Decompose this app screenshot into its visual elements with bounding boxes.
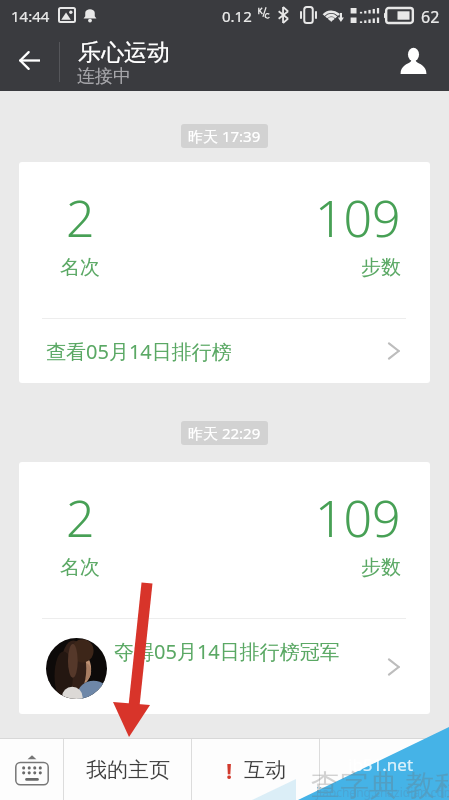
button[interactable]: 夺得05月14日排行榜冠军 [46, 619, 400, 714]
staticText: 2 [66, 184, 95, 252]
staticText: jiaocheng.chazidian.com [316, 784, 449, 800]
staticText: 昨天 17:39 [188, 126, 261, 146]
staticText: 名次 [60, 255, 100, 280]
button[interactable]: Back [0, 30, 59, 91]
staticText: 109 [315, 484, 401, 552]
button[interactable]: 我的主页 [64, 739, 191, 800]
staticText: 查字典 教程网家 [311, 764, 449, 800]
button[interactable]: Profile [387, 30, 439, 91]
staticText: 109 [315, 184, 401, 252]
staticText: 步数 [361, 255, 401, 280]
staticText: 14:44 [11, 6, 50, 26]
button[interactable]: ! [192, 739, 319, 800]
staticText: 我的主页 [86, 757, 170, 783]
button[interactable]: Keyboard [0, 739, 63, 800]
button[interactable]: 查看05月14日排行榜 [46, 319, 400, 383]
staticText: 查看05月14日排行榜 [46, 338, 232, 365]
staticText: 2 [66, 484, 95, 552]
staticText: ! [226, 755, 233, 785]
staticText: 0.12 [222, 6, 252, 26]
staticText: 连接中 [77, 65, 131, 88]
staticText: 夺得05月14日排行榜冠军 [114, 638, 340, 665]
staticText: 互动 [244, 757, 286, 783]
staticText: 昨天 22:29 [188, 423, 261, 443]
staticText: 步数 [361, 555, 401, 580]
staticText: 名次 [60, 555, 100, 580]
button[interactable]: 2 [19, 462, 430, 714]
staticText: 62 [421, 6, 440, 28]
button[interactable]: 2 [19, 162, 430, 383]
staticText: jb51.net [348, 753, 414, 776]
staticText: 乐心运动 [78, 38, 170, 67]
